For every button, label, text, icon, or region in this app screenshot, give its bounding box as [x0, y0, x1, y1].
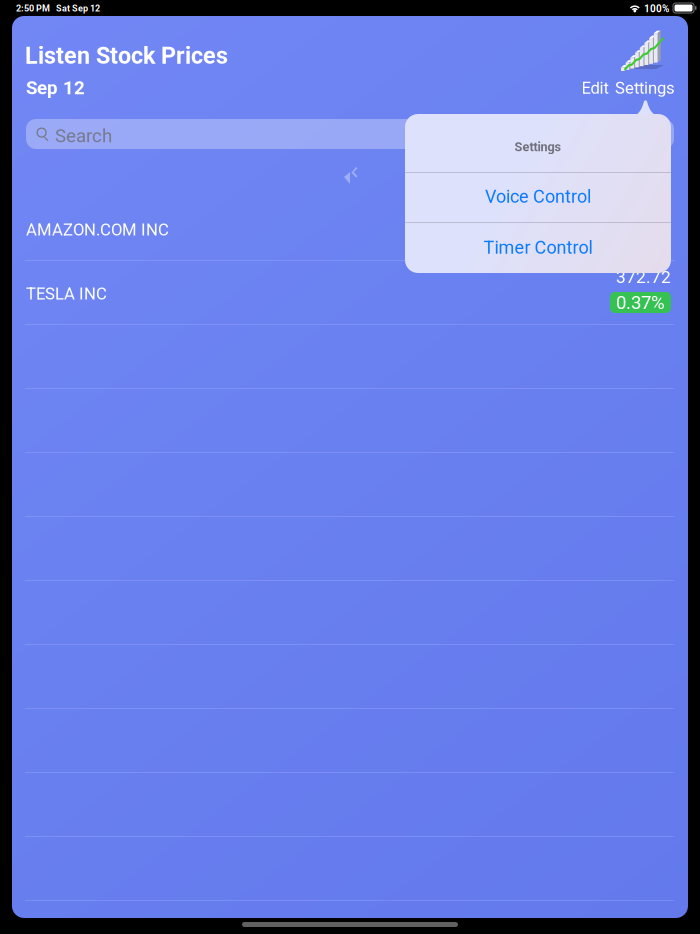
button[interactable]: Edit — [579, 76, 611, 100]
button[interactable]: Voice Control — [405, 171, 671, 222]
button[interactable]: AMAZON.COM INC — [25, 196, 674, 260]
button[interactable]: TESLA INC — [25, 260, 674, 324]
staticText: 372.72 — [616, 267, 671, 287]
staticText: Settings — [514, 140, 561, 154]
staticText: Edit — [581, 78, 608, 98]
staticText: Search — [55, 125, 112, 147]
staticText: AMAZON.COM INC — [26, 220, 169, 239]
staticText: 2:50 PM — [16, 3, 50, 14]
staticText: 0.37% — [616, 292, 665, 313]
staticText: Settings — [615, 78, 675, 98]
staticText: Voice Control — [485, 186, 591, 207]
staticText: TESLA INC — [26, 284, 107, 303]
staticText: Sat Sep 12 — [56, 3, 100, 14]
staticText: 100% — [644, 3, 669, 15]
staticText: Timer Control — [483, 237, 592, 258]
button[interactable]: Timer Control — [405, 222, 671, 273]
button[interactable]: Settings — [612, 76, 678, 100]
staticText: Sep 12 — [26, 77, 85, 99]
staticText: Listen Stock Prices — [25, 42, 228, 69]
